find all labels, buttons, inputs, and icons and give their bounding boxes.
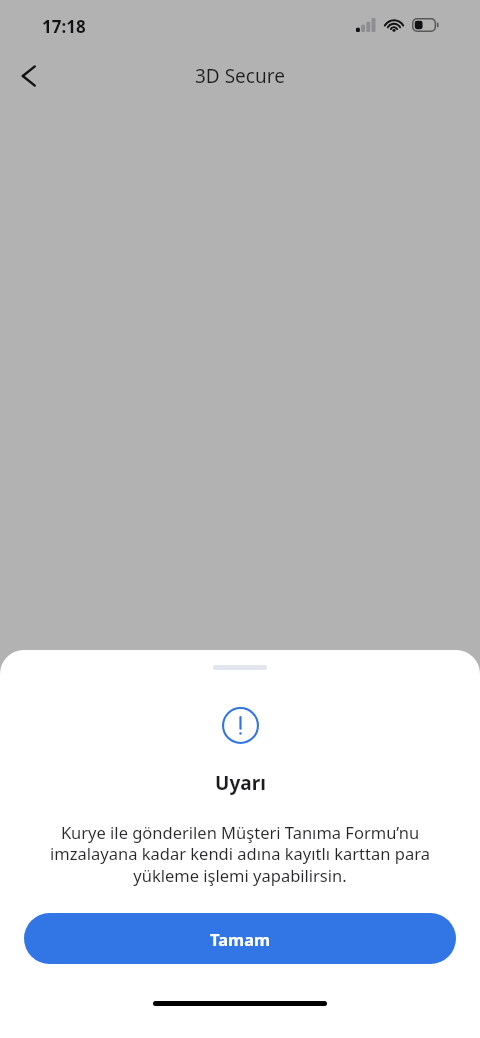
staticText: 3D Secure (195, 63, 285, 89)
staticText: Kurye ile gönderilen Müşteri Tanıma Form… (34, 821, 446, 887)
staticText: Tamam (210, 928, 271, 950)
button[interactable]: Back (6, 56, 50, 96)
button[interactable]: Tamam (24, 913, 456, 964)
staticText: Uyarı (215, 770, 266, 796)
staticText: 17:18 (42, 15, 86, 38)
